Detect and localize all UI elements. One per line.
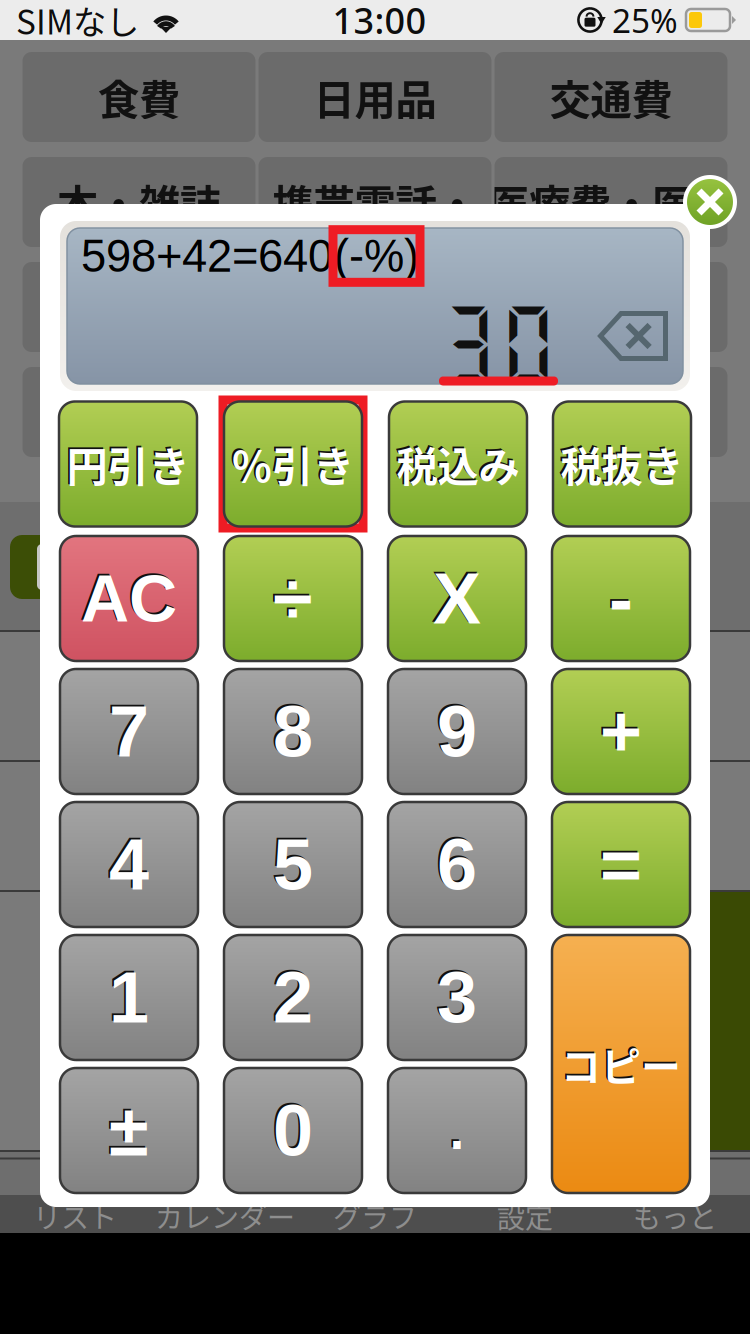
button[interactable]: AC bbox=[60, 536, 198, 661]
staticText: . bbox=[449, 1101, 464, 1160]
staticText: 3 bbox=[435, 955, 475, 1036]
staticText: ÷ bbox=[273, 558, 313, 639]
button[interactable] bbox=[22, 367, 255, 457]
button[interactable]: 8 bbox=[224, 669, 362, 794]
staticText: 3 bbox=[437, 957, 477, 1038]
button[interactable]: %引き bbox=[224, 401, 362, 526]
staticText: カレンダー bbox=[155, 1196, 295, 1236]
staticText: - bbox=[609, 558, 633, 639]
button[interactable]: ÷ bbox=[224, 536, 362, 661]
staticText: 交通費 bbox=[549, 67, 672, 127]
button[interactable]: 円引き bbox=[59, 401, 197, 526]
button[interactable]: X bbox=[388, 536, 526, 661]
staticText: 6 bbox=[437, 824, 477, 905]
staticText: グラフ bbox=[333, 1196, 417, 1236]
staticText: 0 bbox=[273, 1090, 313, 1171]
button[interactable]: 0 bbox=[224, 1068, 362, 1193]
staticText: 食費 bbox=[98, 67, 180, 127]
button[interactable]: 日用品 bbox=[258, 52, 491, 142]
staticText: %引き bbox=[230, 432, 352, 492]
button[interactable]: リスト bbox=[0, 1195, 150, 1233]
staticText: 本・雑誌 bbox=[57, 172, 221, 232]
button[interactable] bbox=[258, 262, 491, 352]
staticText: 4 bbox=[109, 824, 149, 905]
button[interactable]: 税抜き bbox=[553, 401, 691, 526]
staticText: 1 bbox=[109, 957, 149, 1038]
staticText: (-%) bbox=[334, 231, 419, 281]
button[interactable]: 6 bbox=[388, 802, 526, 927]
button[interactable]: グラフ bbox=[300, 1195, 450, 1233]
staticText: ± bbox=[109, 1090, 149, 1171]
button[interactable]: 携帯電話・ bbox=[258, 157, 491, 247]
staticText: X bbox=[433, 558, 481, 639]
button[interactable]: 食費 bbox=[22, 52, 255, 142]
button[interactable]: コピー bbox=[552, 935, 690, 1193]
button[interactable]: 交通費 bbox=[494, 52, 727, 142]
staticText: + bbox=[598, 689, 640, 770]
staticText: もっと bbox=[633, 1196, 717, 1236]
staticText: AC bbox=[79, 559, 175, 634]
button[interactable]: もっと bbox=[600, 1195, 750, 1233]
staticText: 2 bbox=[271, 955, 311, 1036]
staticText: . bbox=[448, 1099, 463, 1158]
button[interactable]: 本・雑誌 bbox=[22, 157, 255, 247]
staticText: 2 bbox=[273, 957, 313, 1038]
staticText: 7 bbox=[109, 691, 149, 772]
button[interactable]: 7 bbox=[60, 669, 198, 794]
button[interactable]: 税込み bbox=[389, 401, 527, 526]
staticText: = bbox=[600, 824, 642, 905]
button[interactable]: 1 bbox=[60, 935, 198, 1060]
staticText: 8 bbox=[271, 689, 311, 770]
staticText: リスト bbox=[33, 1196, 117, 1236]
button[interactable] bbox=[494, 262, 727, 352]
button[interactable]: 設定 bbox=[450, 1195, 600, 1233]
staticText: 日用品 bbox=[313, 67, 436, 127]
button[interactable]: = bbox=[552, 802, 690, 927]
button[interactable]: . bbox=[388, 1068, 526, 1193]
staticText: AC bbox=[81, 561, 177, 636]
staticText: 税抜き bbox=[559, 432, 682, 492]
button[interactable] bbox=[22, 262, 255, 352]
button[interactable]: カレンダー bbox=[150, 1195, 300, 1233]
staticText: ÷ bbox=[271, 556, 311, 637]
staticText: 9 bbox=[437, 691, 477, 772]
button[interactable]: + bbox=[552, 669, 690, 794]
staticText: 9 bbox=[435, 689, 475, 770]
staticText: 5 bbox=[273, 824, 313, 905]
staticText: 598+42=640 bbox=[81, 231, 333, 281]
staticText: 設定 bbox=[497, 1196, 553, 1236]
button[interactable]: 閉じる bbox=[682, 174, 738, 230]
staticText: - bbox=[607, 556, 631, 637]
staticText: = bbox=[598, 822, 640, 903]
staticText: X bbox=[431, 556, 479, 637]
button[interactable]: 医療費・医薬 bbox=[494, 157, 727, 247]
button[interactable] bbox=[494, 367, 727, 457]
staticText: 25% bbox=[612, 0, 678, 42]
staticText: 0 bbox=[271, 1088, 311, 1169]
staticText: 7 bbox=[107, 689, 147, 770]
button[interactable]: 4 bbox=[60, 802, 198, 927]
button[interactable] bbox=[258, 367, 491, 457]
button[interactable]: ± bbox=[60, 1068, 198, 1193]
staticText: 携帯電話・ bbox=[272, 172, 477, 232]
staticText: SIMなし bbox=[16, 0, 139, 44]
staticText: 税込み bbox=[396, 434, 519, 494]
staticText: ± bbox=[107, 1088, 147, 1169]
staticText: 30 bbox=[438, 294, 558, 390]
staticText: 1 bbox=[107, 955, 147, 1036]
button[interactable]: 9 bbox=[388, 669, 526, 794]
staticText: コピー bbox=[561, 1035, 681, 1093]
staticText: 円引き bbox=[66, 434, 189, 494]
button[interactable]: 2 bbox=[224, 935, 362, 1060]
staticText: %引き bbox=[232, 434, 354, 494]
staticText: 5 bbox=[271, 822, 311, 903]
button[interactable]: - bbox=[552, 536, 690, 661]
staticText: コピー bbox=[559, 1033, 679, 1091]
staticText: 税込み bbox=[395, 432, 518, 492]
button[interactable]: 5 bbox=[224, 802, 362, 927]
staticText: 4 bbox=[107, 822, 147, 903]
button[interactable]: 3 bbox=[388, 935, 526, 1060]
staticText: 6 bbox=[435, 822, 475, 903]
staticText: 医療費・医薬 bbox=[488, 172, 734, 232]
staticText: 円引き bbox=[65, 432, 188, 492]
